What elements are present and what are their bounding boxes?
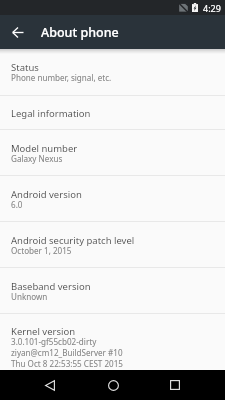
staticText: ziyan@cm12_BuildServer #10	[11, 347, 123, 358]
button[interactable]: Home	[88, 370, 138, 400]
staticText: Android security patch level	[11, 234, 135, 247]
staticText: Kernel version	[11, 325, 76, 338]
staticText: Model number	[11, 142, 78, 155]
staticText: Status	[11, 61, 39, 74]
staticText: Unknown	[11, 291, 48, 302]
staticText: 6.0	[11, 199, 23, 210]
staticText: Galaxy Nexus	[11, 153, 63, 164]
staticText: Android version	[11, 188, 82, 201]
staticText: Baseband version	[11, 280, 91, 293]
staticText: About phone	[41, 24, 119, 41]
button[interactable]: Back	[25, 370, 75, 400]
button[interactable]: Baseband version	[0, 268, 225, 313]
staticText: Phone number, signal, etc.	[11, 72, 112, 83]
button[interactable]: Model number	[0, 130, 225, 175]
staticText: Thu Oct 8 22:53:55 CEST 2015	[11, 358, 123, 368]
staticText: Legal information	[11, 107, 91, 120]
button[interactable]: Recent apps	[150, 370, 200, 400]
staticText: 4:29	[203, 2, 221, 14]
button[interactable]: Kernel version	[0, 314, 225, 370]
button[interactable]: Legal information	[0, 96, 225, 129]
staticText: October 1, 2015	[11, 245, 72, 256]
button[interactable]: Navigate up	[0, 15, 34, 49]
staticText: 3.0.101-gf55cb02-dirty	[11, 336, 97, 347]
button[interactable]: Android security patch level	[0, 222, 225, 267]
button[interactable]: Status	[0, 49, 225, 95]
button[interactable]: Android version	[0, 176, 225, 221]
